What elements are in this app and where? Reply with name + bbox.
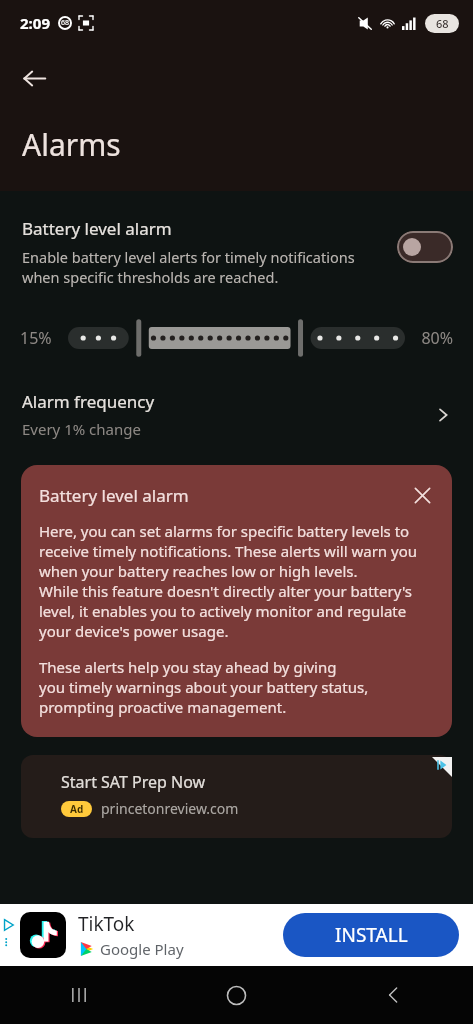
staticText: princetonreview.com — [101, 799, 239, 818]
staticText: Battery level alarm — [22, 217, 172, 240]
staticText: INSTALL — [335, 922, 408, 948]
staticText: These alerts help you stay ahead by givi… — [39, 657, 369, 717]
staticText: 15% — [20, 327, 68, 349]
staticText: Enable battery level alerts for timely n… — [22, 247, 385, 288]
button[interactable]: Start SAT Prep Now — [21, 755, 452, 838]
staticText: 2:09 — [20, 13, 50, 33]
button[interactable]: Home — [157, 966, 315, 1024]
button[interactable]: Recent apps — [0, 966, 157, 1024]
staticText: 80% — [405, 327, 453, 349]
staticText: Google Play — [100, 939, 184, 959]
staticText: Ad — [70, 802, 84, 816]
button[interactable]: Battery level alarm toggle — [397, 231, 453, 263]
button[interactable]: Battery level alarm — [0, 205, 473, 294]
staticText: Battery level alarm — [39, 484, 406, 507]
button[interactable]: Battery level alarm — [21, 465, 452, 737]
button[interactable]: TikTok — [0, 904, 473, 966]
staticText: Every 1% change — [22, 419, 141, 439]
button[interactable]: Close — [406, 479, 438, 511]
staticText: 68 — [61, 18, 70, 28]
staticText: 68 — [436, 16, 449, 31]
button[interactable]: Back — [10, 54, 58, 102]
staticText: Here, you can set alarms for specific ba… — [39, 521, 434, 641]
staticText: Start SAT Prep Now — [61, 771, 206, 793]
button[interactable]: Alarm frequency — [0, 386, 473, 443]
button[interactable]: INSTALL — [283, 913, 459, 957]
staticText: TikTok — [78, 911, 135, 937]
staticText: Alarms — [22, 124, 121, 165]
staticText: Alarm frequency — [22, 390, 155, 413]
button[interactable]: Back — [315, 966, 473, 1024]
